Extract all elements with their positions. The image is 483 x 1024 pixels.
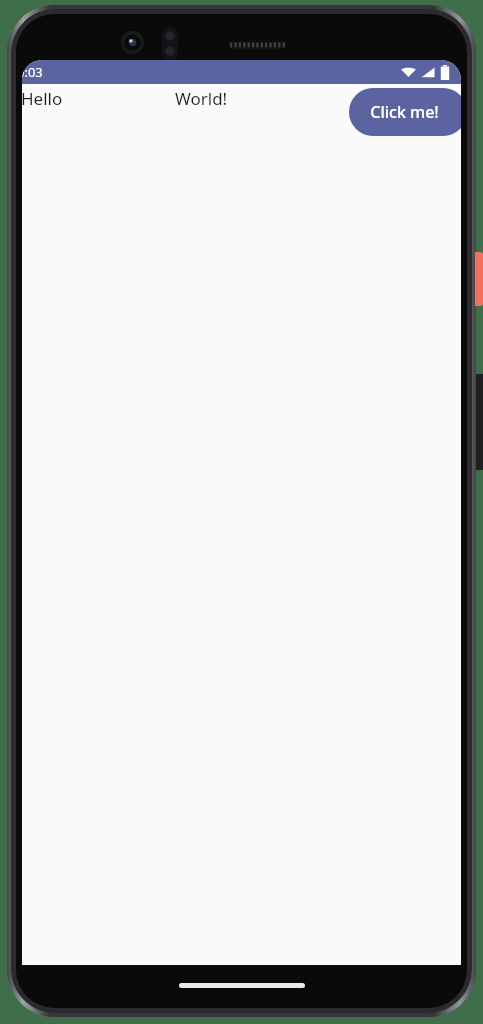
other: Power bbox=[475, 252, 483, 306]
staticText: World! bbox=[175, 87, 228, 110]
staticText: Click me! bbox=[370, 101, 439, 123]
staticText: Hello bbox=[22, 87, 63, 110]
staticText: 0:03 bbox=[22, 63, 43, 81]
button[interactable]: Click me! bbox=[349, 88, 461, 136]
